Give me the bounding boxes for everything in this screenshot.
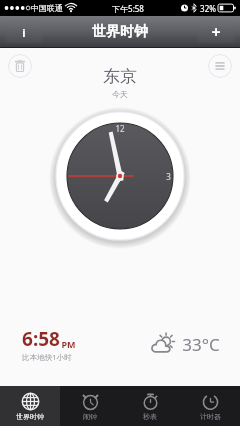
button[interactable]: 闹钟 xyxy=(60,386,120,426)
staticText: 3 xyxy=(166,171,171,182)
staticText: 12 xyxy=(115,123,125,134)
staticText: 世界时钟 xyxy=(16,412,44,421)
staticText: PM xyxy=(61,338,76,350)
staticText: 东京 xyxy=(103,66,137,87)
button[interactable]: 世界时钟 xyxy=(0,386,60,426)
button[interactable]: Add city xyxy=(198,21,234,43)
staticText: 闹钟 xyxy=(83,412,97,421)
staticText: 6:58 xyxy=(22,326,60,352)
staticText: 33°C xyxy=(182,333,220,356)
button[interactable]: Info xyxy=(6,21,42,43)
staticText: 世界时钟 xyxy=(92,23,148,41)
staticText: 计时器 xyxy=(200,412,221,421)
staticText: i xyxy=(22,25,26,40)
button[interactable]: 秒表 xyxy=(120,386,180,426)
staticText: 32% xyxy=(200,3,216,14)
staticText: 下午5:58 xyxy=(112,3,144,14)
staticText: + xyxy=(211,21,221,43)
button[interactable]: Menu xyxy=(208,54,232,78)
staticText: 秒表 xyxy=(143,412,157,421)
staticText: 中国联通 xyxy=(31,3,63,13)
staticText: 今天 xyxy=(112,89,128,99)
button[interactable]: Delete city xyxy=(8,54,32,78)
staticText: 比本地快1小时 xyxy=(22,352,72,362)
button[interactable]: 计时器 xyxy=(180,386,240,426)
